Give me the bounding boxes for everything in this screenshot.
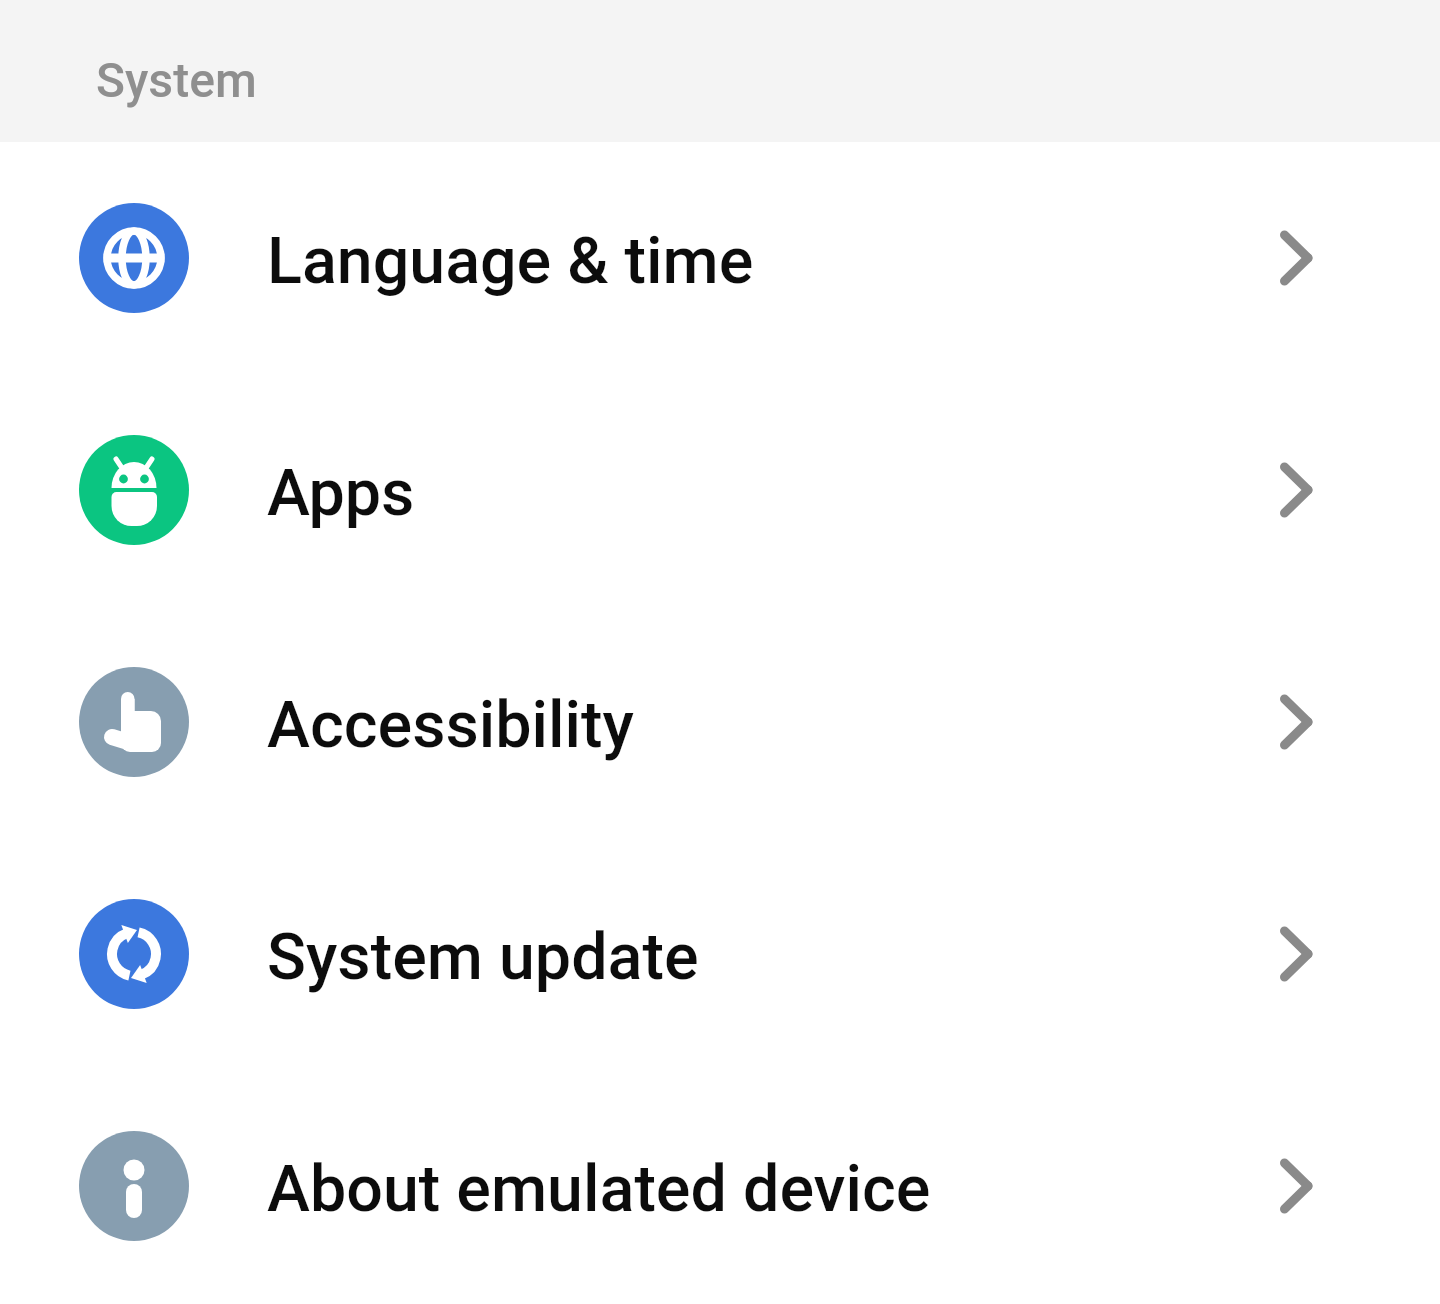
- staticText: Apps: [267, 455, 415, 531]
- staticText: Language & time: [267, 223, 754, 299]
- button[interactable]: Language & time: [0, 142, 1440, 374]
- staticText: Accessibility: [267, 687, 634, 763]
- button[interactable]: Apps: [0, 374, 1440, 606]
- staticText: About emulated device: [267, 1151, 931, 1227]
- button[interactable]: System update: [0, 838, 1440, 1070]
- button[interactable]: Accessibility: [0, 606, 1440, 838]
- staticText: System update: [267, 919, 699, 995]
- staticText: System: [96, 52, 257, 108]
- button[interactable]: About emulated device: [0, 1070, 1440, 1302]
